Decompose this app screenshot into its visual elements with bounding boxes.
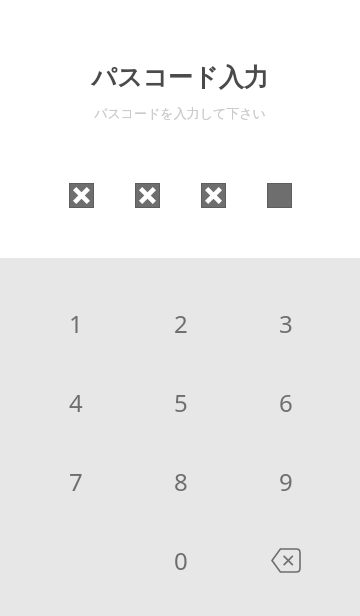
staticText: 5 bbox=[174, 386, 188, 419]
staticText: 9 bbox=[279, 465, 293, 498]
button[interactable]: 2 bbox=[128, 284, 233, 363]
staticText: 8 bbox=[174, 465, 188, 498]
button[interactable]: 9 bbox=[233, 442, 338, 521]
staticText: 2 bbox=[174, 307, 188, 340]
staticText: 7 bbox=[69, 465, 83, 498]
button[interactable]: 4 bbox=[23, 363, 128, 442]
button[interactable]: 1 bbox=[23, 284, 128, 363]
staticText: 1 bbox=[69, 307, 83, 340]
staticText: パスコード入力 bbox=[91, 62, 269, 93]
button[interactable]: Delete bbox=[233, 521, 338, 600]
staticText: 6 bbox=[279, 386, 293, 419]
staticText: パスコードを入力して下さい bbox=[94, 105, 266, 121]
button[interactable]: 0 bbox=[128, 521, 233, 600]
staticText: 3 bbox=[279, 307, 293, 340]
button[interactable]: 7 bbox=[23, 442, 128, 521]
button[interactable]: 3 bbox=[233, 284, 338, 363]
button[interactable]: 6 bbox=[233, 363, 338, 442]
button[interactable]: 8 bbox=[128, 442, 233, 521]
button[interactable]: 5 bbox=[128, 363, 233, 442]
staticText: 0 bbox=[174, 544, 188, 577]
staticText: 4 bbox=[69, 386, 83, 419]
